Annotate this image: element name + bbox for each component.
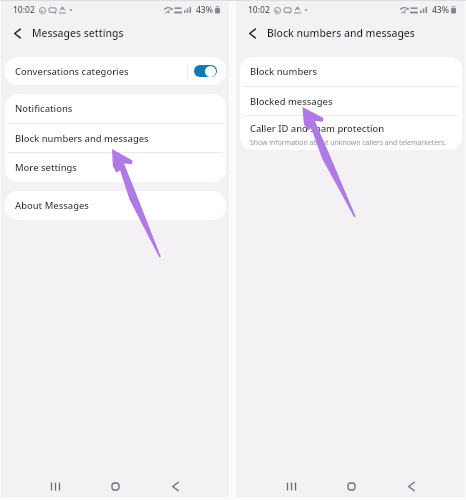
staticText: More settings [15,161,77,174]
button[interactable]: Recent apps [38,476,72,497]
staticText: Messages settings [32,26,124,40]
button[interactable]: Conversations categories toggle [194,65,217,77]
staticText: 43% [196,4,213,16]
button[interactable]: Recent apps [274,476,308,497]
staticText: Notifications [15,102,73,115]
staticText: Conversations categories [15,65,129,78]
button[interactable]: Home [334,476,368,497]
button[interactable]: Block numbers and messages [5,124,226,152]
staticText: Block numbers and messages [267,26,415,40]
button[interactable]: Navigate up [236,20,269,47]
button[interactable]: Caller ID and spam protection [240,116,462,150]
button[interactable]: More settings [5,153,226,182]
staticText: Blocked messages [250,95,333,108]
button[interactable]: Notifications [5,94,226,123]
button[interactable]: Conversations categories [5,57,226,85]
button[interactable]: Blocked messages [240,87,462,115]
button[interactable]: About Messages [5,191,226,220]
staticText: Caller ID and spam protection [250,122,385,135]
staticText: 43% [432,4,449,16]
staticText: Show information about unknown callers a… [250,138,447,147]
button[interactable]: Block numbers [240,57,462,86]
button[interactable]: Navigate up [1,20,34,47]
staticText: About Messages [15,199,89,212]
button[interactable]: Back [394,476,428,497]
staticText: Block numbers [250,65,318,78]
button[interactable]: Home [98,476,132,497]
staticText: 10:02 [248,4,270,16]
button[interactable]: Back [158,476,192,497]
staticText: 10:02 [13,4,35,16]
staticText: Block numbers and messages [15,132,149,145]
